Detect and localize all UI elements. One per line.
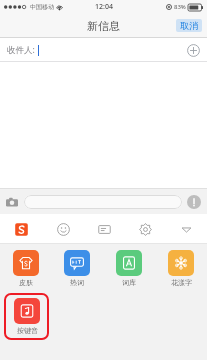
staticText: 新信息 xyxy=(87,19,120,33)
button[interactable]: Hide keyboard xyxy=(166,214,207,244)
staticText: 花漾字 xyxy=(171,278,192,287)
staticText: 取消 xyxy=(180,20,198,31)
staticText: 收件人: xyxy=(7,44,35,56)
button[interactable]: Camera xyxy=(5,195,19,209)
button[interactable]: 热词 xyxy=(51,249,103,288)
staticText: 热词 xyxy=(70,278,84,287)
staticText: 词库 xyxy=(122,278,136,287)
staticText: 12:04 xyxy=(95,2,113,12)
button[interactable] xyxy=(24,195,182,209)
button[interactable]: Add contact xyxy=(187,44,200,57)
button[interactable]: Settings xyxy=(125,214,166,244)
button[interactable]: Emoji xyxy=(42,214,84,244)
staticText: 中国移动 xyxy=(30,3,54,11)
staticText: 83% xyxy=(174,3,186,11)
button[interactable]: 按键音 xyxy=(14,297,40,336)
button[interactable]: 词库 xyxy=(103,249,155,288)
button[interactable]: 花漾字 xyxy=(155,249,207,288)
staticText: 按键音 xyxy=(17,326,38,335)
button[interactable]: Sogou xyxy=(0,214,42,244)
button[interactable]: Text input xyxy=(84,214,125,244)
staticText: 皮肤 xyxy=(19,278,33,287)
button[interactable]: Send xyxy=(186,194,202,210)
button[interactable]: 取消 xyxy=(176,19,202,32)
button[interactable]: 皮肤 xyxy=(0,249,51,288)
